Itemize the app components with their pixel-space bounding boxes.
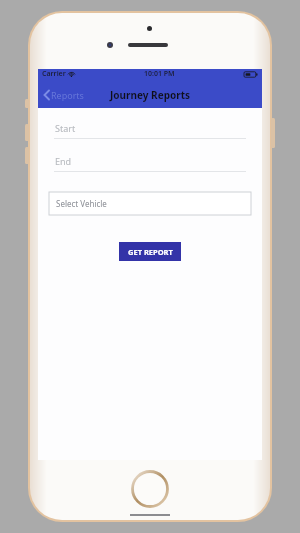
staticText: GET REPORT	[128, 247, 173, 257]
button[interactable]: Back to Reports	[41, 86, 86, 104]
staticText: Carrier	[42, 69, 66, 79]
staticText: Select Vehicle	[56, 198, 107, 209]
staticText: Start	[55, 122, 76, 134]
button[interactable]: Select Vehicle	[49, 192, 251, 215]
button[interactable]: End	[54, 155, 246, 172]
button[interactable]: GET REPORT	[119, 242, 181, 261]
staticText: Reports	[51, 89, 84, 101]
staticText: End	[55, 155, 72, 167]
button[interactable]: Home	[131, 470, 169, 508]
button[interactable]: Start	[54, 122, 246, 139]
staticText: Journey Reports	[110, 88, 191, 102]
staticText: 10:01 PM	[144, 69, 175, 79]
